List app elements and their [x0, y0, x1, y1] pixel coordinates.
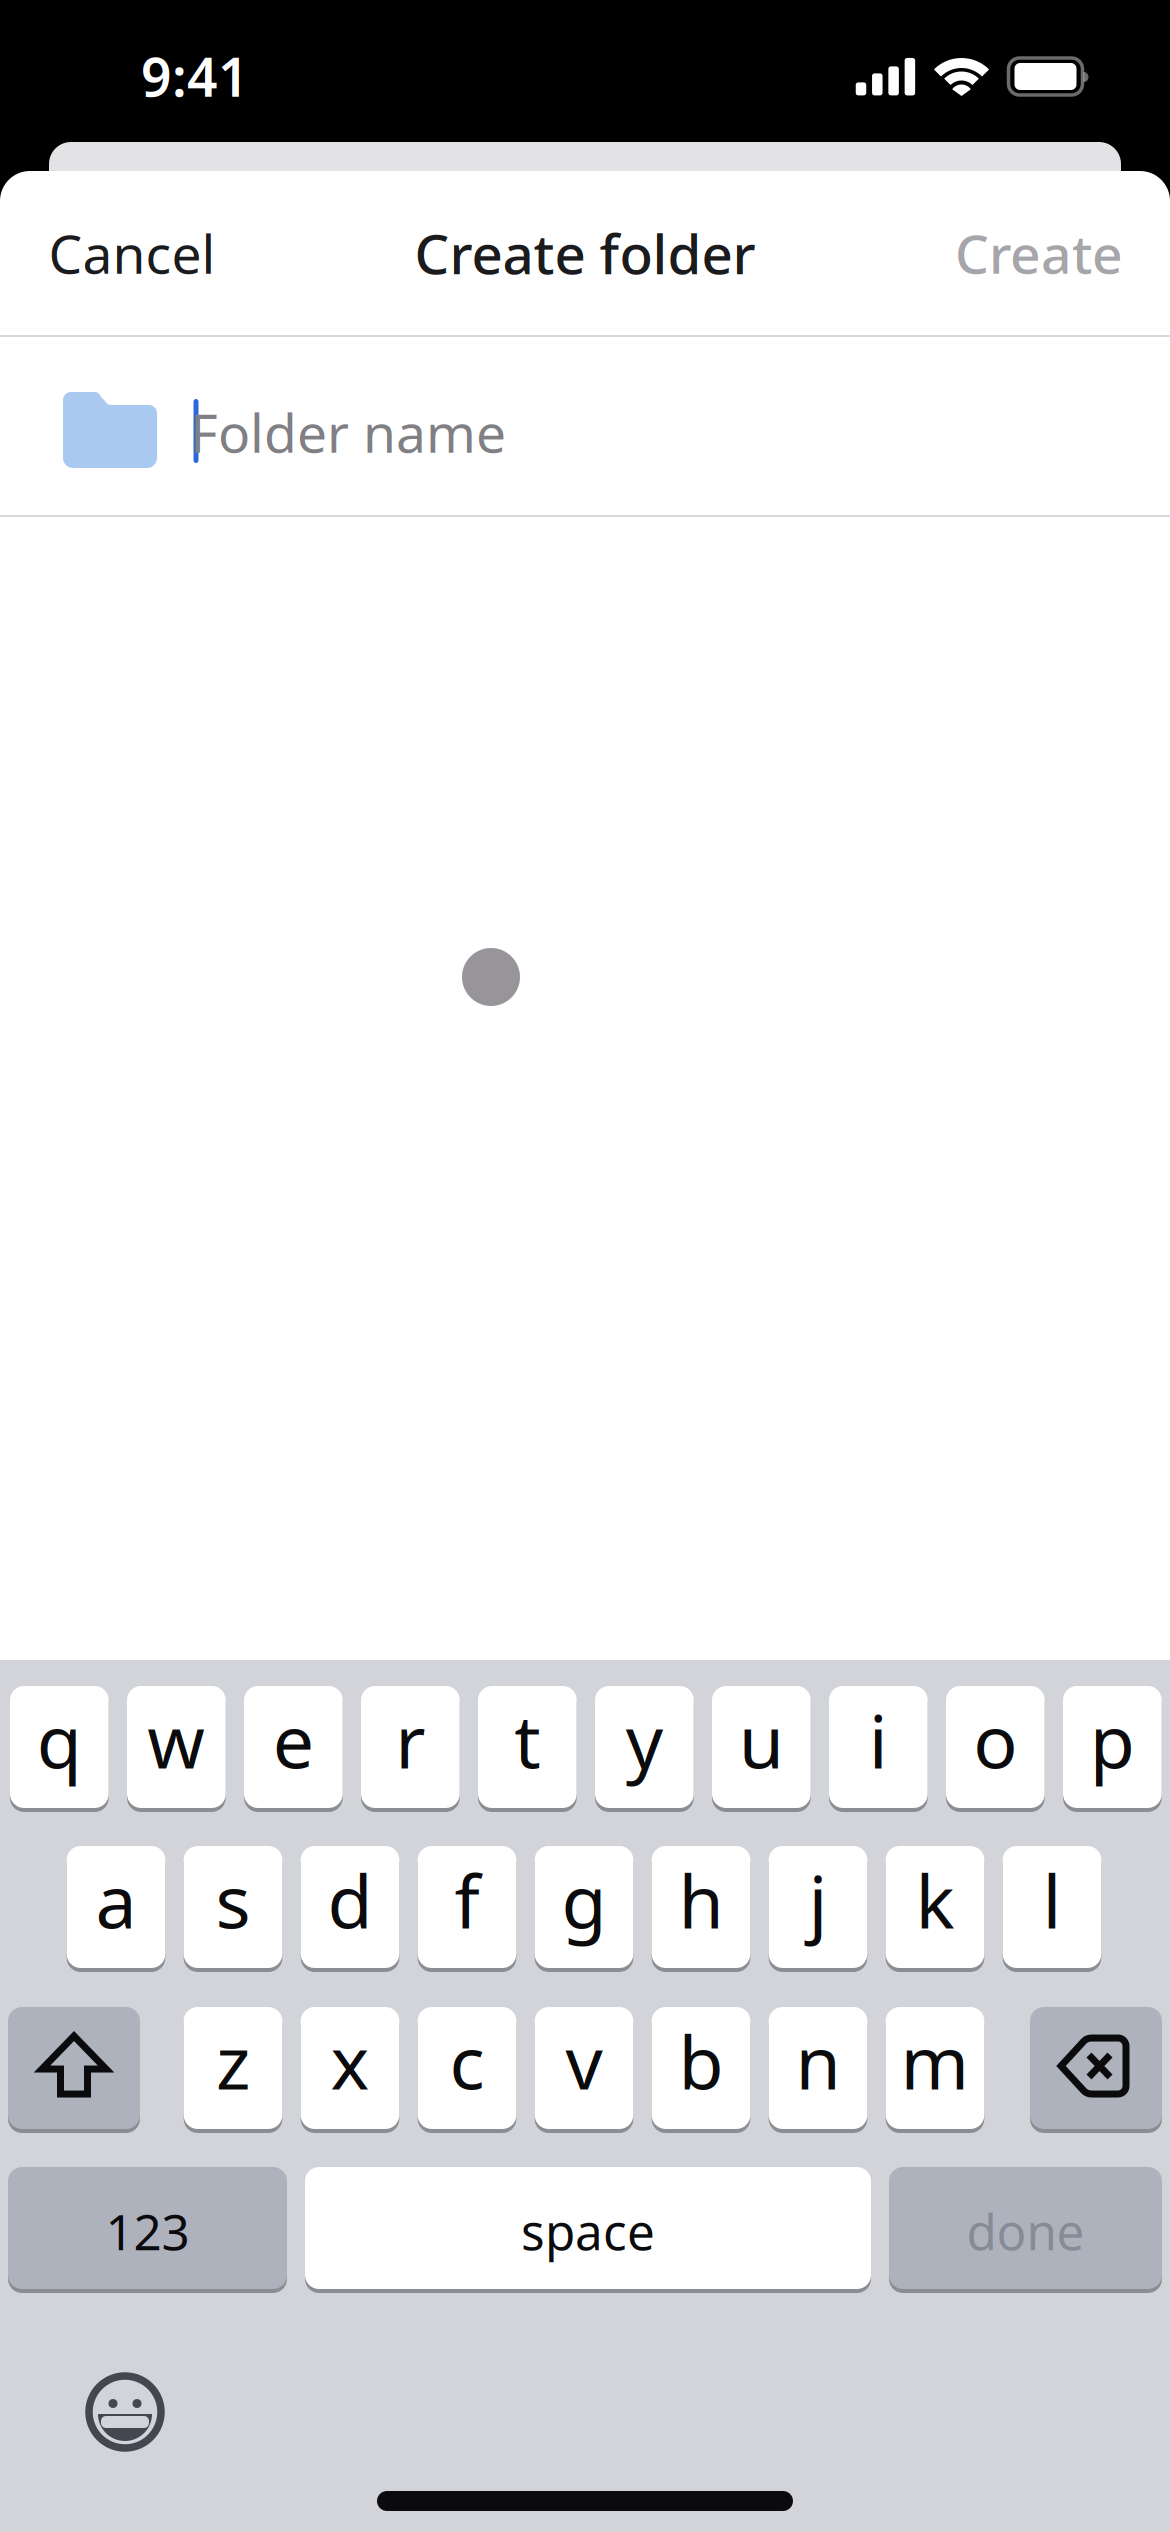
- staticText: 9:41: [141, 41, 249, 111]
- staticText: f: [454, 1851, 479, 1949]
- staticText: e: [273, 1691, 314, 1789]
- staticText: v: [565, 2012, 602, 2110]
- staticText: n: [795, 2012, 840, 2110]
- button[interactable]: o: [946, 1684, 1045, 1810]
- staticText: s: [215, 1851, 250, 1949]
- button[interactable]: d: [301, 1844, 399, 1970]
- button[interactable]: Emoji: [80, 2367, 170, 2457]
- staticText: Create: [955, 218, 1123, 288]
- staticText: a: [95, 1851, 136, 1949]
- button[interactable]: Delete: [1030, 2005, 1162, 2131]
- button[interactable]: h: [652, 1844, 750, 1970]
- staticText: k: [915, 1851, 954, 1949]
- button[interactable]: i: [829, 1684, 928, 1810]
- staticText: o: [973, 1691, 1017, 1789]
- staticText: Cancel: [48, 218, 215, 288]
- staticText: Folder name: [190, 397, 506, 467]
- staticText: space: [521, 2198, 655, 2264]
- staticText: b: [678, 2012, 723, 2110]
- staticText: u: [739, 1691, 784, 1789]
- staticText: t: [514, 1691, 540, 1789]
- staticText: p: [1090, 1691, 1135, 1789]
- button[interactable]: p: [1063, 1684, 1162, 1810]
- button[interactable]: x: [301, 2005, 399, 2131]
- staticText: c: [449, 2012, 484, 2110]
- button[interactable]: Shift: [8, 2005, 140, 2131]
- staticText: z: [216, 2012, 250, 2110]
- button[interactable]: f: [418, 1844, 516, 1970]
- button[interactable]: w: [127, 1684, 226, 1810]
- button[interactable]: space: [305, 2165, 871, 2291]
- staticText: d: [327, 1851, 372, 1949]
- button[interactable]: Folder name: [0, 337, 1170, 515]
- button[interactable]: Create: [955, 218, 1123, 288]
- button[interactable]: done: [889, 2165, 1162, 2291]
- button[interactable]: z: [184, 2005, 282, 2131]
- button[interactable]: y: [595, 1684, 694, 1810]
- button[interactable]: j: [769, 1844, 867, 1970]
- button[interactable]: l: [1003, 1844, 1101, 1970]
- button[interactable]: e: [244, 1684, 343, 1810]
- staticText: m: [900, 2012, 969, 2110]
- button[interactable]: t: [478, 1684, 577, 1810]
- staticText: l: [1042, 1851, 1061, 1949]
- button[interactable]: q: [10, 1684, 109, 1810]
- button[interactable]: n: [769, 2005, 867, 2131]
- button[interactable]: r: [361, 1684, 460, 1810]
- staticText: y: [626, 1691, 663, 1789]
- button[interactable]: m: [886, 2005, 984, 2131]
- staticText: g: [561, 1851, 606, 1949]
- button[interactable]: 123: [8, 2165, 287, 2291]
- staticText: Create folder: [414, 217, 755, 289]
- button[interactable]: k: [886, 1844, 984, 1970]
- staticText: h: [678, 1851, 723, 1949]
- staticText: x: [330, 2012, 369, 2110]
- button[interactable]: b: [652, 2005, 750, 2131]
- button[interactable]: a: [67, 1844, 165, 1970]
- staticText: w: [147, 1691, 205, 1789]
- staticText: r: [395, 1691, 425, 1789]
- staticText: i: [869, 1691, 888, 1789]
- button[interactable]: Cancel: [48, 218, 215, 288]
- button[interactable]: g: [535, 1844, 633, 1970]
- button[interactable]: s: [184, 1844, 282, 1970]
- staticText: j: [808, 1851, 827, 1949]
- button[interactable]: u: [712, 1684, 811, 1810]
- button[interactable]: c: [418, 2005, 516, 2131]
- staticText: q: [37, 1691, 82, 1789]
- staticText: done: [966, 2198, 1084, 2264]
- button[interactable]: v: [535, 2005, 633, 2131]
- staticText: 123: [105, 2198, 189, 2264]
